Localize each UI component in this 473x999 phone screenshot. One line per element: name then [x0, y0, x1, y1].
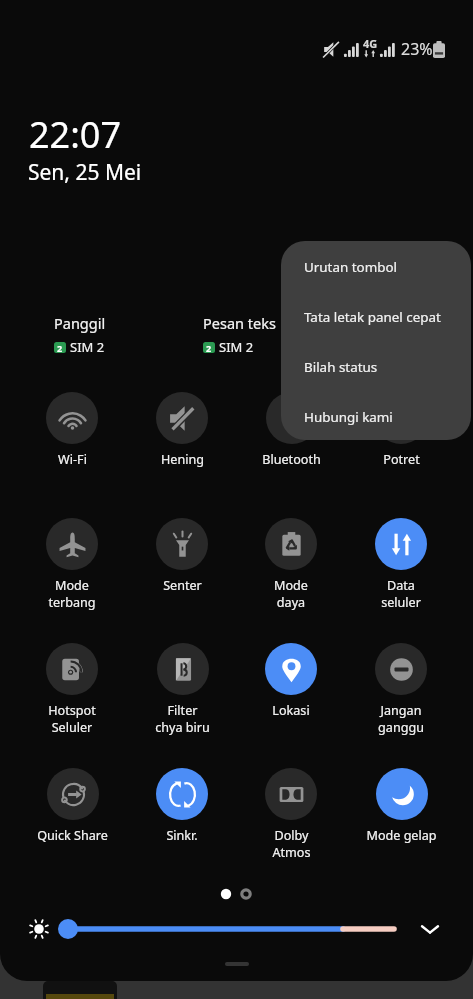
button[interactable]: Bluetooth [239, 392, 343, 468]
staticText: 4G [363, 36, 378, 51]
button[interactable]: Jangan ganggu [349, 643, 453, 736]
button[interactable]: Hening [130, 392, 234, 468]
button[interactable]: Quick Share [20, 768, 124, 844]
staticText: Pesan teks [203, 313, 276, 333]
button[interactable]: Mode daya [239, 518, 343, 611]
staticText: Tata letak panel cepat [304, 308, 441, 326]
staticText: Bilah status [304, 358, 378, 376]
staticText: Dolby Atmos [272, 827, 311, 861]
button[interactable]: Urutan tombol [281, 242, 471, 292]
staticText: Jangan ganggu [378, 702, 424, 736]
staticText: Hotspot Seluler [48, 702, 96, 736]
button[interactable]: Bilah status [281, 342, 471, 392]
staticText: SIM 2 [70, 338, 105, 356]
staticText: Filter chya biru [155, 702, 210, 736]
staticText: Lokasi [272, 702, 310, 719]
staticText: 22:07 [29, 110, 122, 159]
button[interactable]: Pesan teks [203, 313, 276, 356]
button[interactable]: Dolby Atmos [239, 768, 343, 861]
staticText: 2 [57, 342, 63, 353]
staticText: Bluetooth [262, 451, 321, 468]
button[interactable]: Expand panel [416, 915, 444, 943]
staticText: Senter [163, 577, 202, 594]
staticText: Mode daya [274, 577, 308, 611]
staticText: 2 [206, 342, 212, 353]
staticText: 23% [401, 38, 433, 60]
staticText: Hubungi kami [304, 408, 393, 426]
staticText: Sinkr. [166, 827, 198, 844]
staticText: Potret [383, 451, 420, 468]
button[interactable]: Wi-Fi [20, 392, 124, 468]
staticText: Sen, 25 Mei [28, 158, 142, 187]
button[interactable]: Lokasi [239, 643, 343, 719]
button[interactable]: Hubungi kami [281, 392, 471, 440]
button[interactable]: Data seluler [349, 518, 453, 611]
staticText: Hening [161, 451, 204, 468]
button[interactable]: Senter [130, 518, 234, 594]
button[interactable]: Sinkr. [130, 768, 234, 844]
button[interactable]: Potret [349, 392, 453, 468]
staticText: SIM 2 [219, 338, 254, 356]
staticText: Panggil [54, 313, 106, 333]
staticText: Data seluler [381, 577, 421, 611]
staticText: Mode gelap [366, 827, 437, 844]
staticText: Wi-Fi [58, 451, 87, 468]
staticText: Urutan tombol [304, 258, 397, 276]
staticText: Mode terbang [48, 577, 96, 611]
button[interactable]: Hotspot Seluler [20, 643, 124, 736]
button[interactable]: Tata letak panel cepat [281, 292, 471, 342]
button[interactable]: Mode gelap [349, 768, 453, 844]
button[interactable]: Filter chya biru [130, 643, 234, 736]
button[interactable]: Mode terbang [20, 518, 124, 611]
button[interactable]: Panggil [54, 313, 106, 356]
staticText: Quick Share [37, 827, 108, 844]
